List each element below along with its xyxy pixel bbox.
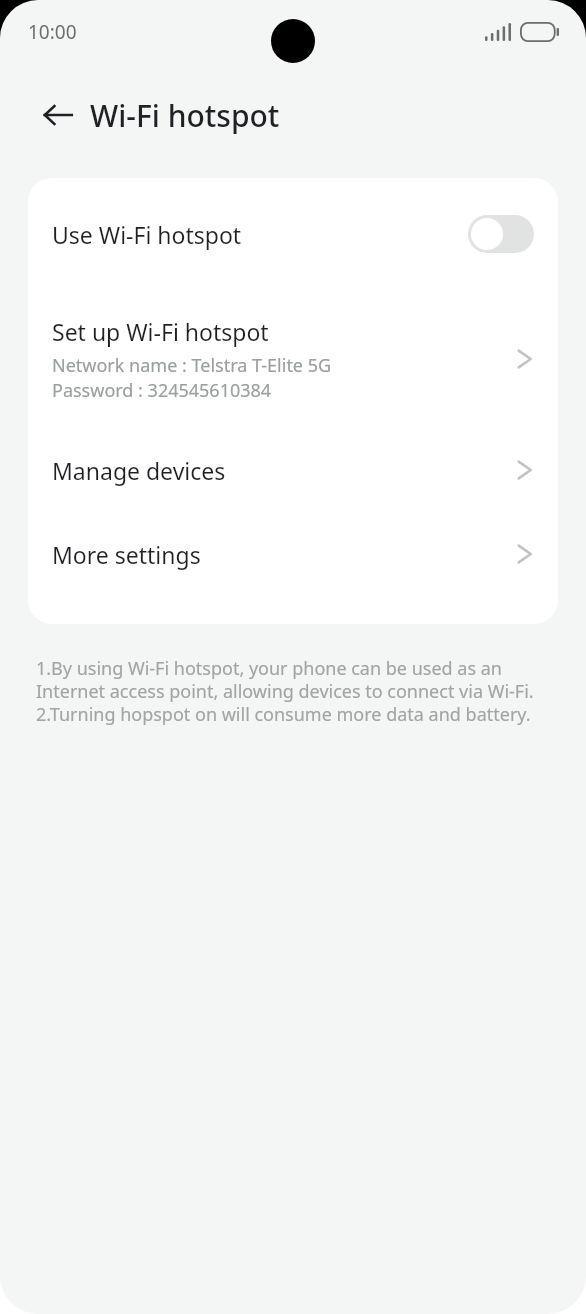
button[interactable]: Back [30,87,86,143]
button[interactable]: Use Wi-Fi hotspot [28,178,558,290]
staticText: Network name : Telstra T-Elite 5G [52,353,332,378]
button[interactable]: Set up Wi-Fi hotspot [28,290,558,428]
staticText: Manage devices [52,455,516,486]
staticText: Use Wi-Fi hotspot [52,219,468,250]
staticText: Password : 324545610384 [52,378,272,403]
button[interactable]: Use Wi-Fi hotspot toggle [468,215,534,253]
button[interactable]: More settings [28,512,558,596]
staticText: Wi-Fi hotspot [90,95,280,136]
staticText: More settings [52,539,516,570]
staticText: Set up Wi-Fi hotspot [52,316,269,347]
button[interactable]: Manage devices [28,428,558,512]
staticText: 10:00 [28,19,77,45]
staticText: 1.By using Wi-Fi hotspot, your phone can… [36,656,552,726]
